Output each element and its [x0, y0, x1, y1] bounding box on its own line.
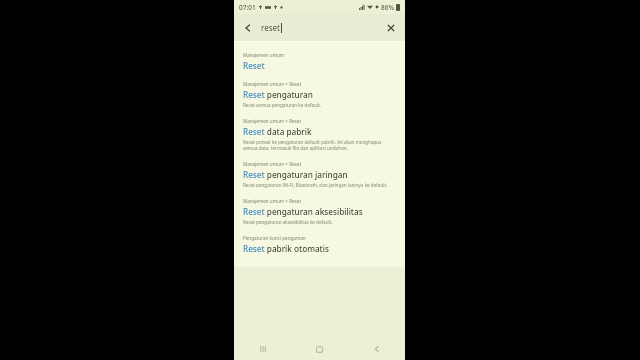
button[interactable]: Recent apps	[234, 338, 291, 360]
staticText: Reset	[243, 60, 265, 71]
button[interactable]: Manajemen umum > Reset	[234, 193, 405, 230]
button[interactable]: Manajemen umum > Reset	[234, 156, 405, 193]
staticText: Pengaturan kunci pengaman	[243, 235, 306, 241]
staticText: Reset pengaturan	[243, 89, 313, 100]
staticText: Reset data pabrik	[243, 126, 312, 137]
staticText: Manajemen umum > Reset	[243, 161, 302, 167]
staticText: Reset pengaturan aksesibilitas ke defaul…	[243, 219, 333, 225]
button[interactable]: Back	[241, 21, 255, 35]
button[interactable]: Manajemen umum	[234, 47, 405, 76]
staticText: Reset pengaturan jaringan	[243, 169, 348, 180]
button[interactable]: Clear search	[384, 21, 398, 35]
staticText: 07:01	[239, 3, 256, 12]
staticText: Manajemen umum > Reset	[243, 118, 302, 124]
staticText: 86%	[381, 3, 394, 12]
staticText: Reset semua pengaturan ke default.	[243, 102, 322, 108]
staticText: Reset pengaturan Wi-Fi, Bluetooth, dan j…	[243, 182, 388, 188]
staticText: Reset pabrik otomatis	[243, 243, 329, 254]
staticText: reset	[261, 22, 280, 33]
staticText: Manajemen umum > Reset	[243, 81, 302, 87]
staticText: Manajemen umum > Reset	[243, 198, 302, 204]
staticText: Reset pengaturan aksesibilitas	[243, 206, 363, 217]
staticText: Reset ponsel ke pengaturan default pabri…	[243, 139, 393, 151]
button[interactable]: Pengaturan kunci pengaman	[234, 230, 405, 259]
button[interactable]: Manajemen umum > Reset	[234, 113, 405, 156]
button[interactable]: Back	[348, 338, 405, 360]
staticText: Manajemen umum	[243, 52, 285, 58]
button[interactable]: Manajemen umum > Reset	[234, 76, 405, 113]
button[interactable]: Home	[291, 338, 348, 360]
